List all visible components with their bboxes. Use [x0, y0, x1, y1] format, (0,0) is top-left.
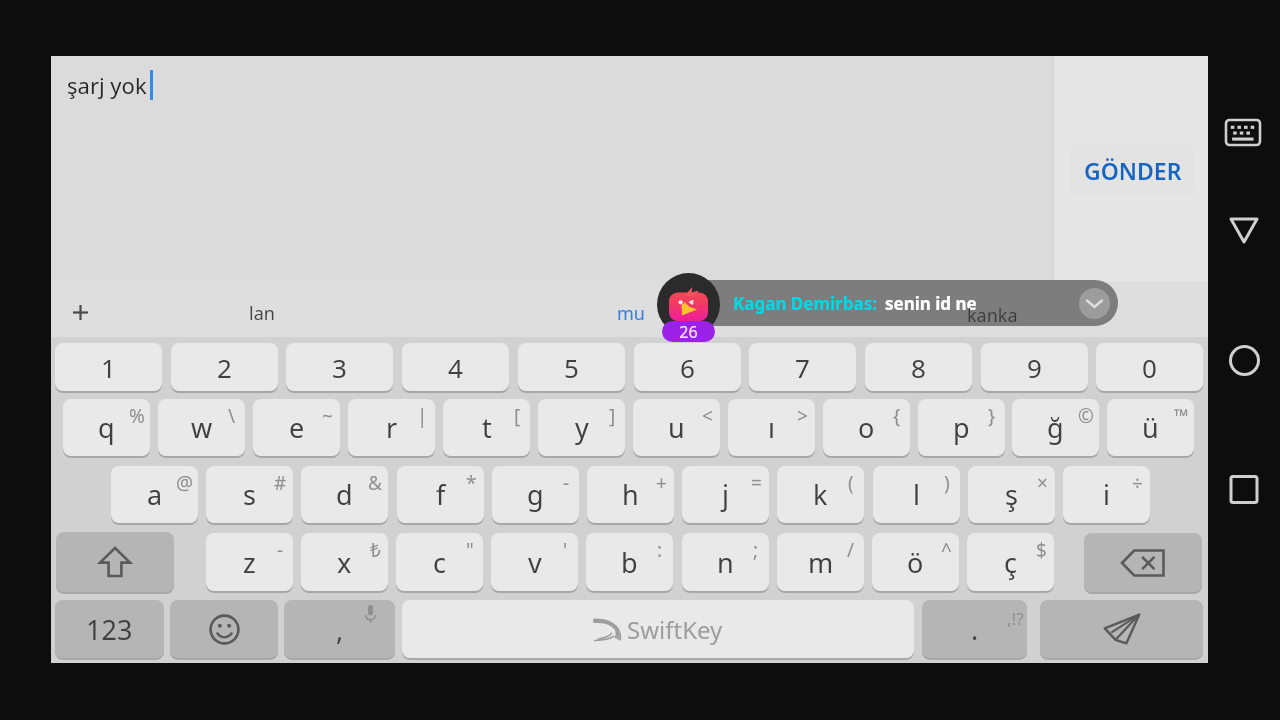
- staticText: a: [147, 476, 163, 513]
- staticText: ^: [941, 537, 952, 563]
- button[interactable]: send: [1040, 600, 1203, 658]
- button[interactable]: Chat bubble: [657, 273, 720, 336]
- staticText: r: [386, 409, 398, 446]
- button[interactable]: y: [538, 399, 625, 456]
- staticText: 0: [1142, 350, 1157, 385]
- button[interactable]: a: [111, 466, 198, 523]
- button[interactable]: z: [206, 533, 293, 591]
- button[interactable]: e: [253, 399, 340, 456]
- staticText: mu: [617, 301, 645, 326]
- button[interactable]: ç: [967, 533, 1054, 591]
- button[interactable]: GÖNDER: [1070, 145, 1195, 196]
- button[interactable]: 9: [981, 343, 1088, 391]
- button[interactable]: 5: [518, 343, 625, 391]
- button[interactable]: ö: [872, 533, 959, 591]
- button[interactable]: 3: [286, 343, 393, 391]
- staticText: ×: [1037, 470, 1048, 496]
- button[interactable]: ü: [1107, 399, 1194, 456]
- staticText: ,: [336, 611, 344, 648]
- staticText: &: [368, 470, 382, 496]
- button[interactable]: r: [348, 399, 435, 456]
- staticText: z: [243, 544, 256, 581]
- button[interactable]: u: [633, 399, 720, 456]
- staticText: 123: [86, 611, 133, 648]
- staticText: =: [751, 470, 762, 496]
- staticText: ": [466, 537, 474, 563]
- button[interactable]: i: [1063, 466, 1150, 523]
- button[interactable]: space: [402, 600, 914, 658]
- staticText: Kagan Demirbas:: [733, 292, 877, 315]
- staticText: ö: [907, 544, 924, 581]
- staticText: t: [482, 409, 492, 446]
- button[interactable]: ğ: [1012, 399, 1099, 456]
- button[interactable]: Recents: [1228, 473, 1260, 505]
- button[interactable]: 4: [402, 343, 509, 391]
- staticText: o: [858, 409, 875, 446]
- staticText: f: [436, 476, 446, 513]
- button[interactable]: shift: [56, 532, 174, 592]
- staticText: -: [563, 470, 570, 496]
- staticText: c: [433, 544, 446, 581]
- staticText: m: [808, 544, 834, 581]
- staticText: q: [98, 409, 115, 446]
- button[interactable]: m: [777, 533, 864, 591]
- button[interactable]: kanka: [967, 303, 1018, 328]
- button[interactable]: 7: [749, 343, 856, 391]
- button[interactable]: ı: [728, 399, 815, 456]
- button[interactable]: k: [777, 466, 864, 523]
- staticText: ÷: [1132, 470, 1143, 496]
- button[interactable]: şarj yok: [51, 56, 1053, 281]
- button[interactable]: emoji: [170, 600, 278, 658]
- button[interactable]: backspace: [1084, 533, 1202, 592]
- button[interactable]: v: [491, 533, 578, 591]
- button[interactable]: 123: [55, 600, 164, 658]
- button[interactable]: 2: [171, 343, 278, 391]
- staticText: ğ: [1047, 409, 1064, 446]
- button[interactable]: ş: [968, 466, 1055, 523]
- staticText: ]: [609, 403, 616, 429]
- button[interactable]: ,: [284, 600, 395, 658]
- button[interactable]: 6: [634, 343, 741, 391]
- button[interactable]: 8: [865, 343, 972, 391]
- staticText: \: [228, 403, 236, 429]
- button[interactable]: 1: [55, 343, 162, 391]
- staticText: |: [417, 403, 428, 429]
- button[interactable]: h: [587, 466, 674, 523]
- staticText: }: [988, 403, 996, 429]
- button[interactable]: g: [492, 466, 579, 523]
- staticText: d: [336, 476, 353, 513]
- staticText: senin id ne: [885, 292, 977, 315]
- button[interactable]: 0: [1096, 343, 1203, 391]
- staticText: x: [337, 544, 352, 581]
- button[interactable]: q: [63, 399, 150, 456]
- button[interactable]: f: [397, 466, 484, 523]
- button[interactable]: b: [586, 533, 673, 591]
- staticText: ı: [768, 409, 775, 446]
- staticText: ;: [753, 537, 759, 563]
- button[interactable]: s: [206, 466, 293, 523]
- button[interactable]: Home: [1228, 344, 1261, 377]
- staticText: 4: [448, 350, 463, 385]
- button[interactable]: l: [873, 466, 960, 523]
- button[interactable]: t: [443, 399, 530, 456]
- button[interactable]: p: [918, 399, 1005, 456]
- button[interactable]: x: [301, 533, 388, 591]
- staticText: ç: [1004, 544, 1017, 581]
- button[interactable]: Expand: [1079, 288, 1110, 319]
- staticText: 9: [1027, 350, 1042, 385]
- button[interactable]: c: [396, 533, 483, 591]
- staticText: SwiftKey: [627, 613, 723, 646]
- staticText: 26: [679, 321, 698, 342]
- button[interactable]: j: [682, 466, 769, 523]
- staticText: ™: [1174, 403, 1189, 429]
- button[interactable]: Hide keyboard: [1222, 116, 1264, 149]
- button[interactable]: Back: [1226, 214, 1262, 246]
- button[interactable]: w: [158, 399, 245, 456]
- button[interactable]: .: [922, 600, 1027, 658]
- staticText: 6: [680, 350, 695, 385]
- button[interactable]: o: [823, 399, 910, 456]
- button[interactable]: d: [301, 466, 388, 523]
- button[interactable]: n: [682, 533, 769, 591]
- button[interactable]: Kagan Demirbas:: [659, 280, 1118, 326]
- staticText: 3: [332, 350, 347, 385]
